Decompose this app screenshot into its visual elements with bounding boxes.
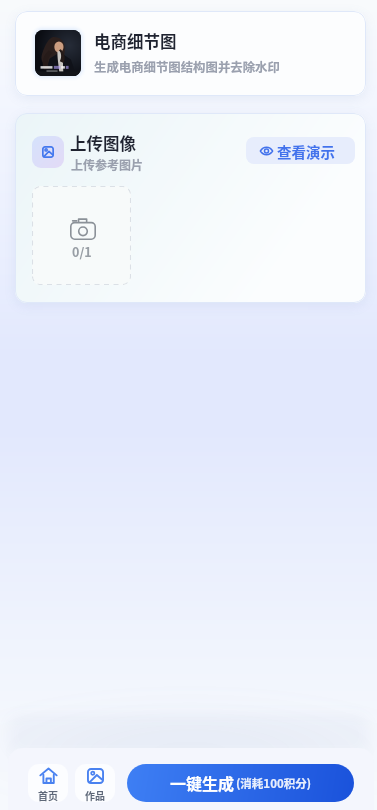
staticText: 0/1 (72, 242, 92, 260)
button[interactable]: 首页 (28, 764, 68, 802)
staticText: 上传参考图片 (71, 156, 144, 173)
button[interactable]: 作品 (75, 764, 115, 802)
button[interactable] (15, 11, 366, 96)
staticText: 首页 (38, 788, 58, 802)
staticText: 上传图像 (70, 131, 136, 155)
staticText: 作品 (85, 788, 105, 802)
button[interactable] (246, 137, 355, 164)
staticText: 查看演示 (277, 141, 335, 162)
button[interactable] (32, 186, 131, 285)
button[interactable] (127, 764, 354, 802)
staticText: 生成电商细节图结构图并去除水印 (94, 58, 280, 76)
staticText: 一键生成 (170, 771, 235, 794)
staticText: 电商细节图 (94, 29, 177, 53)
staticText: (消耗100积分) (236, 775, 312, 792)
